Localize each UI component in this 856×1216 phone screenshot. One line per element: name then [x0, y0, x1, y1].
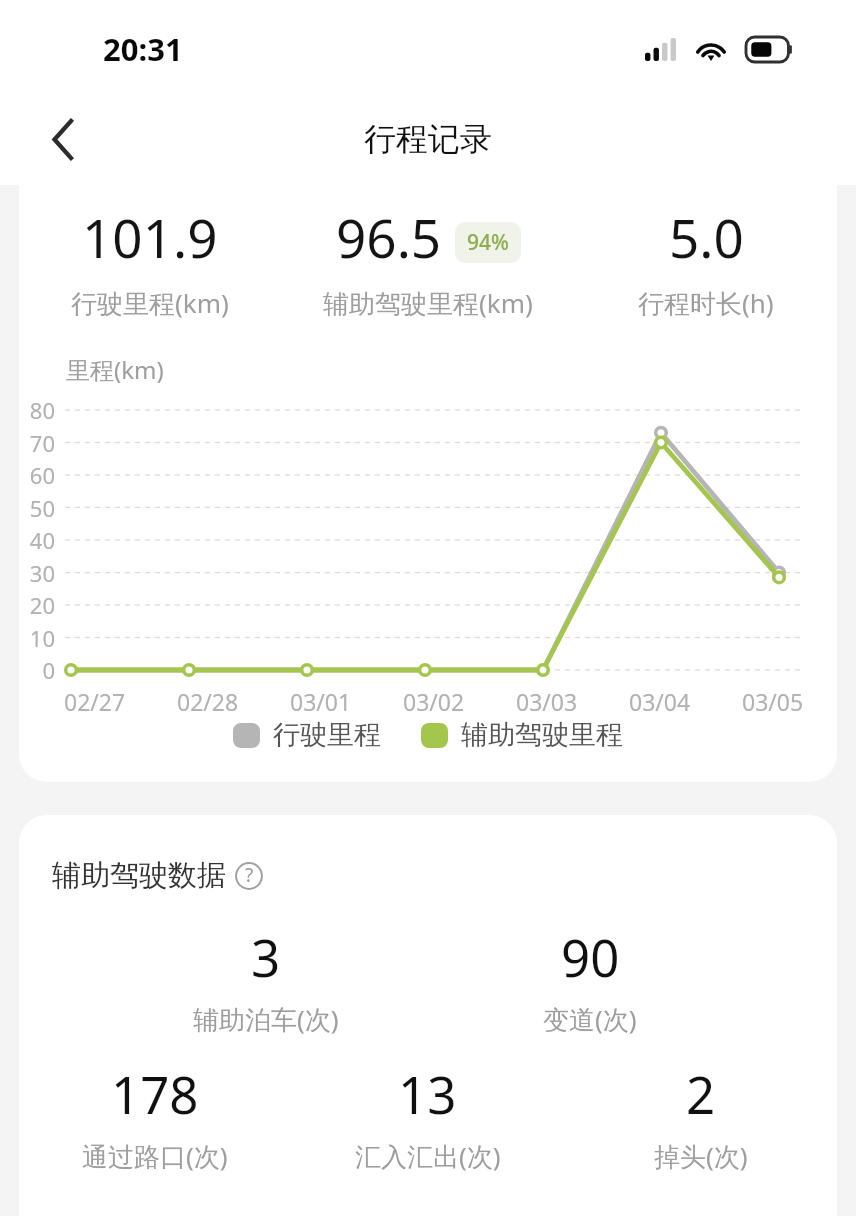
staticText: 辅助驾驶里程(km) [323, 285, 533, 321]
staticText: 20:31 [103, 28, 183, 70]
staticText: 10 [19, 623, 55, 653]
staticText: 行驶里程 [273, 718, 381, 752]
staticText: 里程(km) [66, 353, 164, 386]
staticText: 50 [19, 493, 55, 523]
staticText: 行程记录 [364, 119, 492, 159]
staticText: 13 [398, 1059, 457, 1128]
button[interactable]: 行驶里程 [233, 718, 381, 752]
staticText: 辅助驾驶里程 [461, 718, 623, 752]
staticText: 通过路口(次) [82, 1138, 228, 1174]
staticText: 3 [251, 922, 281, 991]
button[interactable]: Help [231, 858, 267, 894]
staticText: 汇入汇出(次) [355, 1138, 501, 1174]
staticText: 行程时长(h) [638, 285, 774, 321]
staticText: 掉头(次) [654, 1138, 748, 1174]
staticText: 02/27 [64, 686, 126, 717]
staticText: 60 [19, 460, 55, 490]
staticText: 20 [19, 590, 55, 620]
staticText: ? [245, 862, 254, 888]
staticText: 2 [686, 1059, 716, 1128]
staticText: 101.9 [82, 201, 218, 273]
staticText: 96.5 [336, 201, 442, 273]
staticText: 94% [467, 228, 509, 257]
staticText: 0 [19, 655, 55, 685]
staticText: 80 [19, 395, 55, 425]
staticText: 03/02 [403, 686, 465, 717]
staticText: 03/03 [516, 686, 578, 717]
staticText: 178 [111, 1059, 199, 1128]
staticText: 辅助泊车(次) [193, 1001, 339, 1037]
staticText: 03/04 [629, 686, 691, 717]
staticText: 02/28 [177, 686, 239, 717]
staticText: 70 [19, 428, 55, 458]
staticText: 40 [19, 525, 55, 555]
staticText: 30 [19, 558, 55, 588]
staticText: 90 [561, 922, 620, 991]
button[interactable]: 辅助驾驶里程 [421, 718, 623, 752]
staticText: 03/05 [742, 686, 804, 717]
staticText: 辅助驾驶数据 [52, 857, 226, 894]
staticText: 5.0 [669, 201, 744, 273]
staticText: 03/01 [290, 686, 352, 717]
staticText: 变道(次) [543, 1001, 637, 1037]
staticText: 行驶里程(km) [71, 285, 229, 321]
button[interactable]: Back [30, 106, 96, 172]
